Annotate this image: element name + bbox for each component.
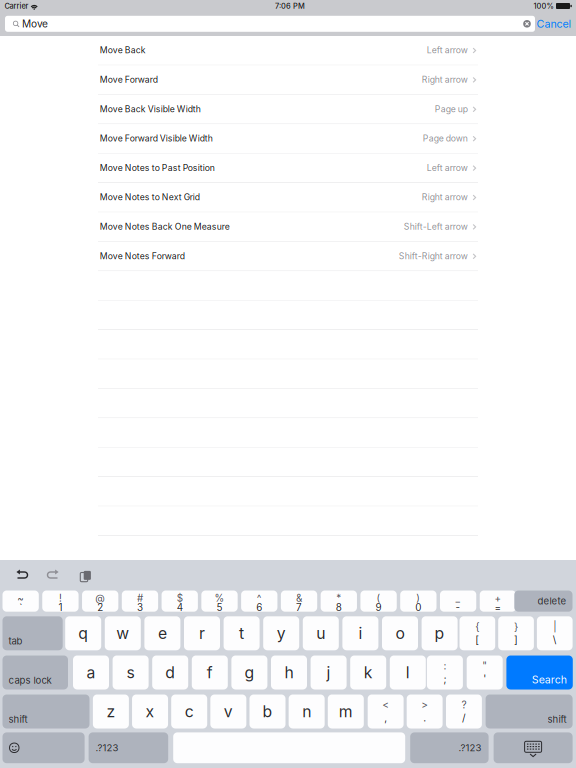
button[interactable]: < [368,694,404,728]
button[interactable]: c [171,694,207,728]
staticText: \ [553,633,557,646]
staticText: n [302,702,311,721]
button[interactable]: w [105,616,141,650]
button[interactable]: : [427,655,463,689]
button[interactable]: Search [506,655,573,689]
button[interactable]: t [224,616,260,650]
button[interactable]: Move Notes to Past Position [98,154,478,183]
button[interactable]: d [152,655,188,689]
button[interactable]: _ [440,590,476,612]
button[interactable]: Cancel [534,14,574,34]
button[interactable]: p [422,616,458,650]
button[interactable]: $ [162,590,198,612]
button[interactable]: shift [486,694,573,728]
button[interactable]: z [93,694,129,728]
staticText: - [456,601,461,613]
button[interactable]: ( [360,590,397,612]
button[interactable]: Move Forward Visible Width [98,124,478,154]
button[interactable]: Move Forward [98,65,478,95]
button[interactable]: " [467,655,503,689]
button[interactable]: Clear text [519,16,535,32]
button[interactable]: { [459,616,495,650]
button[interactable]: Hide keyboard [494,732,573,763]
button[interactable]: | [537,616,573,650]
button[interactable]: e [144,616,180,650]
button[interactable]: n [289,694,325,728]
button[interactable]: } [498,616,534,650]
staticText: Move Back [100,45,146,55]
button[interactable]: i [342,616,378,650]
button[interactable]: ? [446,694,482,728]
button[interactable]: .?123 [410,732,489,763]
button[interactable]: y [263,616,299,650]
button[interactable]: Paste [73,566,95,584]
button[interactable]: + [480,590,516,612]
button[interactable]: v [210,694,246,728]
staticText: & [296,592,302,604]
button[interactable]: a [73,655,109,689]
staticText: { [475,620,479,633]
button[interactable]: Move Notes Back One Measure [98,212,478,242]
button[interactable]: Move Notes Forward [98,242,478,271]
staticText: ~ [17,592,24,604]
button[interactable]: u [303,616,339,650]
button[interactable]: s [113,655,149,689]
button[interactable]: g [231,655,267,689]
staticText: 2 [97,601,103,613]
button[interactable]: f [192,655,228,689]
button[interactable]: caps lock [2,655,68,689]
button[interactable]: delete [514,590,572,612]
button[interactable]: .?123 [89,732,168,763]
button[interactable]: shift [2,694,89,728]
button[interactable]: b [249,694,285,728]
button[interactable]: % [201,590,238,612]
staticText: 6 [256,601,262,613]
staticText: .?123 [459,742,482,754]
button[interactable]: Move Back [98,36,478,65]
button[interactable]: o [382,616,418,650]
button[interactable]: q [65,616,101,650]
button[interactable]: ) [400,590,436,612]
staticText: caps lock [8,674,51,686]
staticText: tab [8,635,22,647]
button[interactable]: Emoji [2,732,85,763]
button[interactable]: Redo [41,566,65,584]
staticText: shift [548,713,567,725]
button[interactable]: Move Notes to Next Grid [98,183,478,212]
staticText: ) [416,592,420,604]
button[interactable] [173,732,405,763]
staticText: g [244,663,254,682]
button[interactable]: h [271,655,307,689]
button[interactable]: x [132,694,168,728]
button[interactable]: ~ [2,590,39,612]
button[interactable]: # [122,590,158,612]
button[interactable]: @ [82,590,118,612]
button[interactable]: j [311,655,347,689]
button[interactable]: & [281,590,317,612]
staticText: Move Notes Forward [100,251,185,261]
button[interactable]: r [184,616,220,650]
button[interactable]: k [350,655,386,689]
staticText: * [336,592,341,604]
staticText: ; [443,673,446,685]
button[interactable]: Undo [10,566,34,584]
button[interactable]: ^ [241,590,277,612]
button[interactable]: > [407,694,443,728]
staticText: " [482,660,487,672]
staticText: Right arrow [422,192,468,202]
button[interactable]: ! [42,590,79,612]
button[interactable]: tab [2,616,63,650]
button[interactable]: m [328,694,364,728]
button[interactable]: * [321,590,357,612]
button[interactable]: Move Back Visible Width [98,95,478,124]
button[interactable]: l [390,655,426,689]
